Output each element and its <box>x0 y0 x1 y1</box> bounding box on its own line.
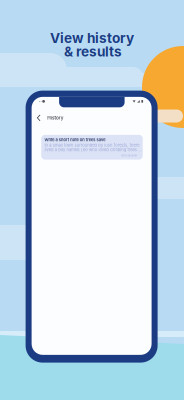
staticText: View history <box>50 30 134 46</box>
staticText: & results <box>64 43 122 60</box>
